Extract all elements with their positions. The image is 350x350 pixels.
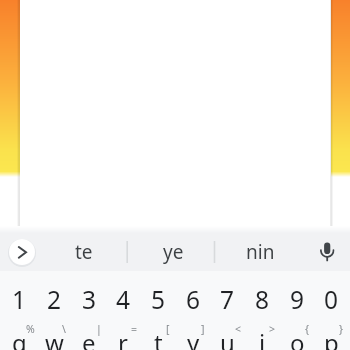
- staticText: 2: [47, 283, 62, 316]
- staticText: \: [62, 322, 66, 336]
- staticText: <: [235, 322, 242, 336]
- staticText: o: [290, 326, 305, 350]
- button[interactable]: p: [314, 326, 348, 350]
- button[interactable]: 5: [141, 282, 175, 316]
- button[interactable]: 8: [245, 282, 279, 316]
- staticText: 6: [186, 283, 201, 316]
- button[interactable]: 3: [72, 282, 106, 316]
- button[interactable]: w: [37, 326, 71, 350]
- staticText: 0: [324, 283, 339, 316]
- button[interactable]: u: [210, 326, 244, 350]
- button[interactable]: 4: [106, 282, 140, 316]
- button[interactable]: q: [2, 326, 36, 350]
- button[interactable]: o: [280, 326, 314, 350]
- button[interactable]: 2: [37, 282, 71, 316]
- button[interactable]: e: [72, 326, 106, 350]
- button[interactable]: nin: [224, 237, 296, 267]
- staticText: e: [82, 326, 96, 350]
- staticText: u: [220, 326, 235, 350]
- staticText: }: [339, 322, 343, 336]
- staticText: ]: [201, 322, 205, 336]
- button[interactable]: ye: [137, 237, 209, 267]
- button[interactable]: t: [141, 326, 175, 350]
- staticText: nin: [246, 239, 275, 265]
- button[interactable]: [313, 238, 341, 266]
- button[interactable]: te: [48, 237, 120, 267]
- staticText: 5: [151, 283, 166, 316]
- button[interactable]: 7: [210, 282, 244, 316]
- staticText: y: [187, 326, 200, 350]
- staticText: i: [259, 326, 266, 350]
- staticText: w: [45, 326, 64, 350]
- button[interactable]: 9: [280, 282, 314, 316]
- staticText: 7: [220, 283, 235, 316]
- staticText: 1: [12, 283, 27, 316]
- staticText: p: [324, 326, 339, 350]
- staticText: r: [118, 326, 128, 350]
- staticText: 4: [116, 283, 131, 316]
- staticText: t: [154, 326, 163, 350]
- staticText: ye: [163, 239, 184, 265]
- staticText: {: [305, 322, 309, 336]
- button[interactable]: 0: [314, 282, 348, 316]
- button[interactable]: y: [176, 326, 210, 350]
- button[interactable]: i: [245, 326, 279, 350]
- button[interactable]: 6: [176, 282, 210, 316]
- staticText: te: [75, 239, 93, 265]
- staticText: [: [166, 322, 170, 336]
- button[interactable]: r: [106, 326, 140, 350]
- staticText: 8: [255, 283, 270, 316]
- button[interactable]: 1: [2, 282, 36, 316]
- staticText: >: [269, 322, 276, 336]
- staticText: 3: [82, 283, 97, 316]
- staticText: 9: [290, 283, 305, 316]
- staticText: =: [131, 322, 138, 336]
- button[interactable]: [9, 239, 35, 265]
- staticText: %: [26, 322, 35, 336]
- staticText: |: [96, 322, 102, 336]
- staticText: q: [12, 326, 27, 350]
